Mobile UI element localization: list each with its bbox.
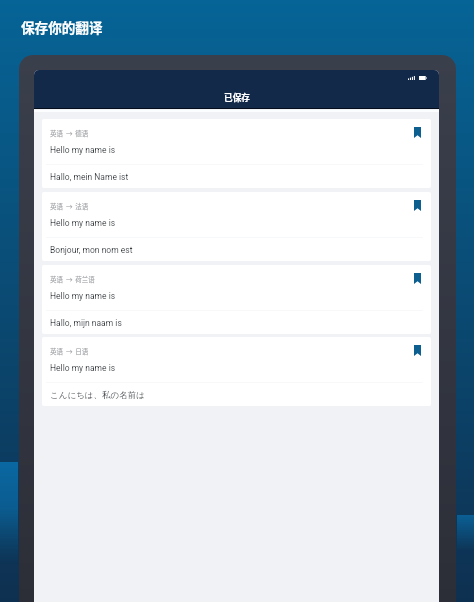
staticText: Hello my name is [50,363,116,373]
staticText: Bonjour, mon nom est [50,245,133,255]
staticText: Hello my name is [50,145,116,155]
staticText: 英语 → 日语 [50,346,89,355]
staticText: 英语 → 法语 [50,201,89,210]
button[interactable]: Bookmark [414,345,421,356]
staticText: 已保存 [224,91,250,103]
button[interactable]: 英语 → 德语 [42,119,431,188]
staticText: Hello my name is [50,291,116,301]
staticText: Hello my name is [50,218,116,228]
button[interactable]: Bookmark [414,127,421,138]
button[interactable]: 英语 → 日语 [42,337,431,406]
button[interactable]: 英语 → 荷兰语 [42,265,431,334]
button[interactable]: Bookmark [414,273,421,284]
staticText: Hallo, mein Name ist [50,172,129,182]
staticText: 保存你的翻译 [21,17,103,37]
button[interactable]: 英语 → 法语 [42,192,431,261]
button[interactable]: Bookmark [414,200,421,211]
staticText: 英语 → 荷兰语 [50,274,95,283]
staticText: 英语 → 德语 [50,128,89,137]
staticText: Hallo, mijn naam is [50,318,122,328]
staticText: こんにちは、私の名前は [50,390,145,401]
